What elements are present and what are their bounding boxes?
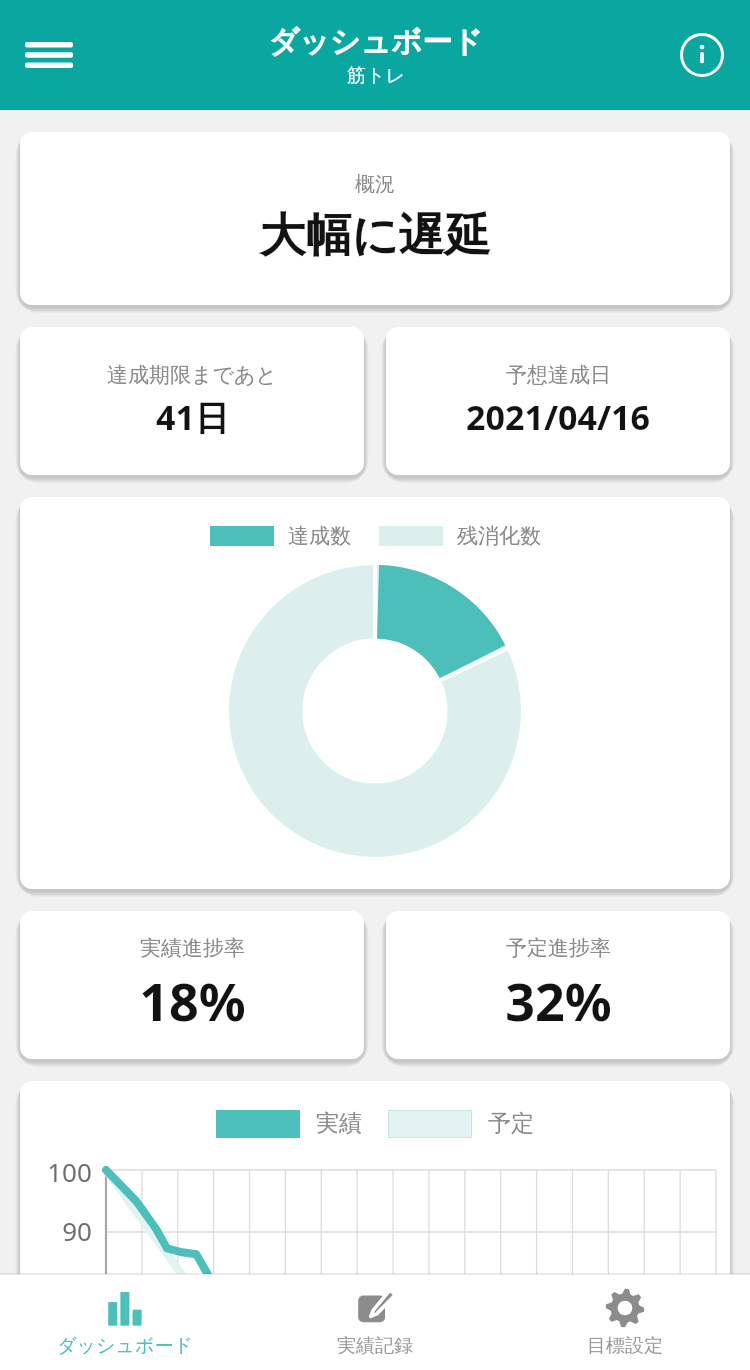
- staticText: 18%: [139, 965, 246, 1036]
- staticText: 達成数: [288, 523, 351, 549]
- staticText: 実績記録: [337, 1334, 413, 1358]
- staticText: 実績: [316, 1109, 362, 1138]
- staticText: 32%: [505, 965, 612, 1036]
- button[interactable]: 達成期限まであと: [20, 327, 364, 475]
- staticText: ダッシュボード: [268, 23, 483, 61]
- button[interactable]: 目標設定: [500, 1274, 750, 1370]
- staticText: 予想達成日: [506, 362, 611, 388]
- staticText: 目標設定: [587, 1334, 663, 1358]
- staticText: ダッシュボード: [57, 1334, 193, 1358]
- button[interactable]: 予定進捗率: [386, 911, 730, 1059]
- button[interactable]: Information: [672, 25, 732, 85]
- staticText: 80: [62, 1272, 92, 1307]
- staticText: 大幅に遅延: [259, 207, 491, 265]
- staticText: 90: [62, 1213, 92, 1248]
- staticText: 41日: [156, 394, 229, 440]
- staticText: 概況: [355, 172, 395, 197]
- staticText: 100: [47, 1154, 92, 1189]
- button[interactable]: Menu: [10, 20, 88, 90]
- button[interactable]: ダッシュボード: [0, 1274, 250, 1370]
- staticText: 2021/04/16: [466, 394, 650, 440]
- button[interactable]: 概況: [20, 132, 730, 305]
- button[interactable]: 予想達成日: [386, 327, 730, 475]
- button[interactable]: 実績記録: [250, 1274, 500, 1370]
- button[interactable]: 実績進捗率: [20, 911, 364, 1059]
- staticText: 予定進捗率: [506, 935, 611, 961]
- staticText: 残消化数: [457, 523, 541, 549]
- staticText: 予定: [488, 1109, 534, 1138]
- staticText: 筋トレ: [347, 64, 405, 88]
- staticText: 達成期限まであと: [107, 362, 277, 388]
- staticText: 実績進捗率: [140, 935, 245, 961]
